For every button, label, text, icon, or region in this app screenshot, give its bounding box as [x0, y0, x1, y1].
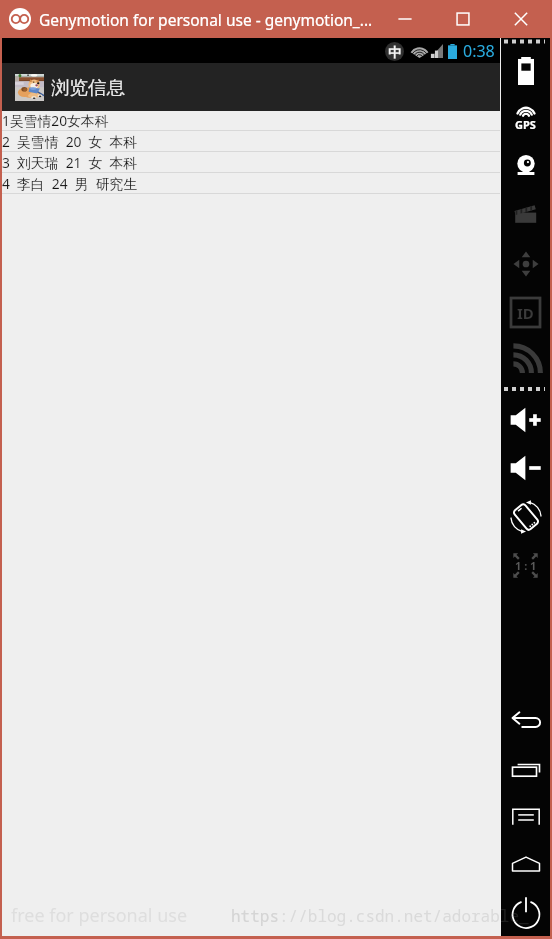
staticText: ID	[517, 303, 534, 323]
button[interactable]: Volume up	[501, 396, 550, 444]
button[interactable]: Navigation	[501, 240, 550, 288]
button[interactable]: 4 李白 24 男 研究生	[0, 173, 500, 193]
button[interactable]: Power	[501, 888, 550, 936]
staticText: GPS	[515, 117, 536, 132]
staticText: 4 李白 24 男 研究生	[2, 174, 138, 193]
staticText: Genymotion for personal use - genymotion…	[39, 9, 373, 30]
button[interactable]: 3 刘天瑞 21 女 本科	[0, 152, 500, 172]
button[interactable]: Close	[492, 0, 550, 38]
button[interactable]: Rotate	[501, 493, 550, 541]
button[interactable]: Menu	[501, 793, 550, 841]
button[interactable]: Volume down	[501, 444, 550, 492]
staticText: https://blog.csdn.net/adorable_	[231, 905, 529, 927]
staticText: 中	[388, 44, 401, 60]
button[interactable]: Minimize	[376, 0, 434, 38]
button[interactable]: 2 吴雪情 20 女 本科	[0, 131, 500, 151]
staticText: 浏览信息	[51, 76, 125, 99]
button[interactable]: 1吴雪情20女本科	[0, 111, 500, 130]
button[interactable]: Identifiers	[501, 288, 550, 336]
button[interactable]: Camera	[501, 142, 550, 190]
staticText: 1吴雪情20女本科	[2, 111, 109, 130]
button[interactable]: Maximize	[434, 0, 492, 38]
button[interactable]: Network	[501, 336, 550, 384]
button[interactable]: Video recording	[501, 191, 550, 239]
button[interactable]: Home	[501, 840, 550, 888]
staticText: 0:38	[463, 40, 495, 62]
button[interactable]: Recents	[501, 745, 550, 793]
staticText: 1 : 1	[515, 558, 537, 573]
button[interactable]: Battery	[501, 47, 550, 95]
button[interactable]: GPS	[501, 95, 550, 143]
staticText: free for personal use	[11, 903, 188, 928]
button[interactable]: Reset zoom	[501, 541, 550, 589]
staticText: https://blog.csdn.net/adorable_	[231, 905, 282, 929]
button[interactable]: Back	[501, 697, 550, 745]
staticText: 3 刘天瑞 21 女 本科	[2, 153, 138, 172]
staticText: 2 吴雪情 20 女 本科	[2, 132, 138, 151]
